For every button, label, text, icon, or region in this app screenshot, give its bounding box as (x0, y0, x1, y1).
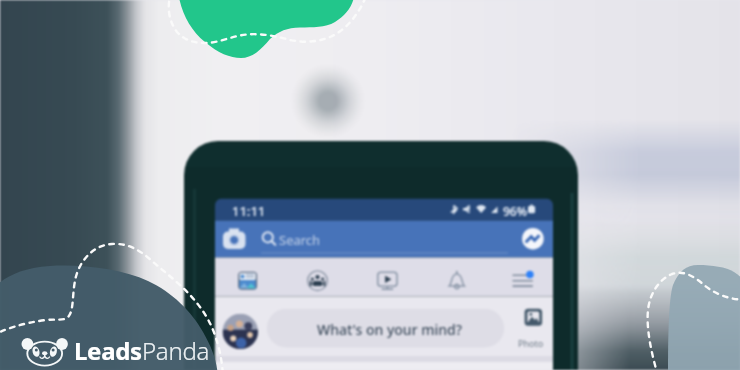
staticText: 96% (503, 203, 527, 219)
staticText: Panda (142, 334, 210, 367)
button[interactable]: LeadsPanda home (20, 332, 220, 368)
staticText: 11:11 (232, 202, 266, 220)
staticText: Photo (518, 337, 544, 349)
staticText: Leads (74, 334, 142, 367)
staticText: Search (279, 231, 321, 249)
staticText: What's on your mind? (317, 320, 462, 339)
